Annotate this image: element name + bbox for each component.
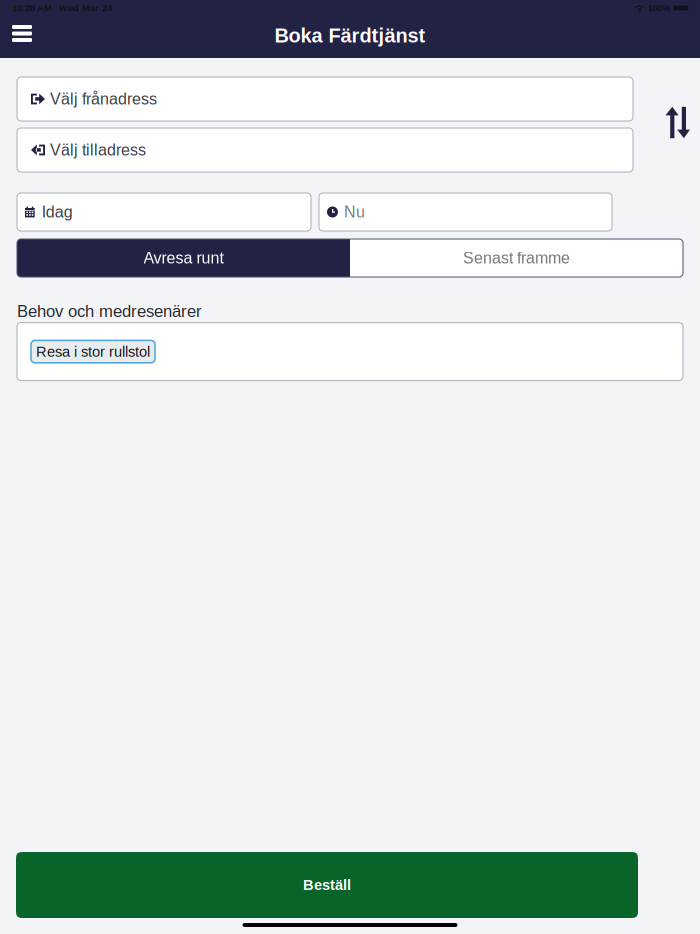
button[interactable]: Nu	[319, 193, 612, 231]
staticText: Idag	[42, 203, 73, 221]
button[interactable]: Byt från- och tilladress	[651, 99, 696, 150]
button[interactable]: Meny	[0, 16, 46, 58]
button[interactable]: Avresa runt	[17, 239, 350, 277]
staticText: Beställ	[303, 877, 351, 893]
button[interactable]: Välj tilladress	[17, 128, 633, 172]
staticText: Boka Färdtjänst	[274, 24, 425, 47]
staticText: Nu	[344, 203, 365, 221]
staticText: Wed Mar 24	[59, 3, 112, 13]
button[interactable]: Senast framme	[350, 239, 683, 277]
staticText: 100%	[648, 3, 671, 13]
staticText: 10:28 AM	[12, 3, 52, 13]
button[interactable]: Beställ	[16, 852, 638, 918]
staticText: Välj frånadress	[50, 90, 157, 108]
staticText: Avresa runt	[143, 249, 223, 267]
button[interactable]: Välj frånadress	[17, 77, 633, 121]
button[interactable]: Resa i stor rullstol	[31, 340, 155, 363]
staticText: Resa i stor rullstol	[36, 343, 150, 360]
button[interactable]: Idag	[17, 193, 311, 231]
staticText: Senast framme	[463, 249, 570, 267]
staticText: Behov och medresenärer	[17, 302, 202, 321]
staticText: Välj tilladress	[50, 141, 146, 159]
